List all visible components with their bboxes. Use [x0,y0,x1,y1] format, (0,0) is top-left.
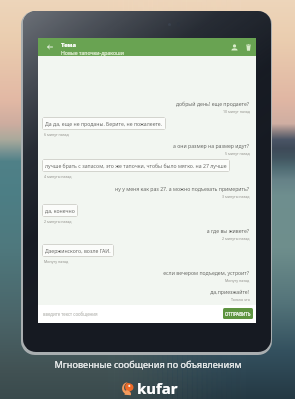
button[interactable]: ОТПРАВИТЬ [223,308,253,319]
staticText: Минуту назад [225,278,250,283]
staticText: 3 минуты назад [222,194,250,199]
staticText: Тема [61,41,77,49]
staticText: Дзержинского, возле ГАИ. [45,247,111,254]
staticText: 6 минут назад [44,132,69,137]
staticText: Мгновенные сообщения по объявлениям [54,358,242,371]
button[interactable]: Contact profile [226,38,242,56]
button[interactable]: Back [42,38,58,56]
button[interactable]: а где вы живете? [203,227,252,234]
button[interactable]: а они размер на размер идут? [170,142,252,149]
staticText: ОТПРАВИТЬ [225,311,251,317]
staticText: 2 минуты назад [222,236,250,241]
button[interactable]: если вечером подъедем, устроит? [160,269,252,276]
staticText: Новые тапочки-дракоши [61,49,124,56]
staticText: 5 минут назад [225,151,250,156]
button[interactable]: Delete conversation [240,38,256,56]
staticText: 4 минуты назад [44,174,72,179]
staticText: 10 минут назад [223,109,250,114]
staticText: 2 минуты назад [44,219,72,224]
staticText: Минуту назад [44,259,69,264]
staticText: Только что [231,297,250,302]
staticText: да, конечно [45,207,75,214]
button[interactable]: лучше брать с запасом, это же тапочки, ч… [42,159,230,172]
button[interactable]: Дзержинского, возле ГАИ. [42,244,114,257]
staticText: kufar [137,378,178,398]
button[interactable]: добрый день! еще продаете? [172,100,252,107]
staticText: введите текст сообщения [43,311,98,317]
button[interactable]: да, конечно [42,204,78,217]
staticText: лучше брать с запасом, это же тапочки, ч… [45,162,227,169]
button[interactable]: да,приезжайте! [207,288,252,295]
staticText: Да да, еще не проданы. Берите, не пожале… [45,120,163,127]
button[interactable]: ну у меня как раз 27. а можно подъехать … [112,185,252,192]
button[interactable]: Да да, еще не проданы. Берите, не пожале… [42,117,166,130]
